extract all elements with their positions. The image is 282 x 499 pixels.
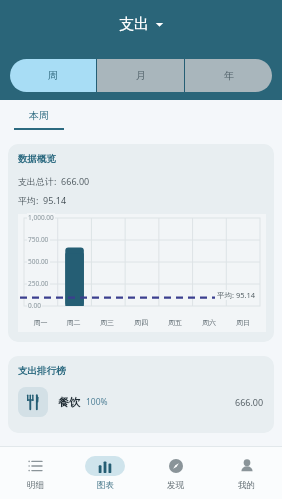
staticText: 0.00 (28, 301, 41, 310)
staticText: 周五 (158, 318, 192, 327)
button[interactable]: 数据概览 (8, 144, 274, 342)
other: 发现 (169, 459, 183, 473)
button[interactable]: 我的 (211, 447, 282, 499)
staticText: 明细 (27, 480, 44, 491)
button[interactable]: 支出排行榜 (8, 356, 274, 433)
staticText: 发现 (167, 480, 184, 491)
other: 明细 (28, 459, 42, 473)
staticText: 支出 (119, 15, 149, 34)
staticText: 数据概览 (18, 153, 56, 165)
button[interactable]: 餐饮 (18, 387, 264, 417)
staticText: 750.00 (28, 235, 49, 244)
staticText: 平均: 95.14 (217, 290, 256, 300)
other: 图表 (98, 459, 112, 473)
staticText: 本周 (29, 109, 49, 122)
staticText: 666.00 (235, 396, 264, 408)
staticText: 我的 (238, 480, 255, 491)
staticText: 周日 (226, 318, 260, 327)
staticText: 500.00 (28, 257, 49, 266)
staticText: 图表 (97, 480, 114, 491)
staticText: 周二 (57, 318, 90, 327)
button[interactable]: 图表 (70, 447, 140, 499)
button[interactable]: 本周 (14, 109, 64, 130)
staticText: 支出总计: 666.00 (18, 175, 90, 187)
staticText: 250.00 (28, 279, 49, 288)
button[interactable]: 支出 (115, 13, 168, 36)
other: 我的 (240, 459, 254, 473)
staticText: 周四 (124, 318, 158, 327)
staticText: 支出排行榜 (18, 365, 66, 377)
staticText: 年 (224, 69, 234, 82)
staticText: 餐饮 (58, 395, 80, 409)
button[interactable]: 明细 (0, 447, 70, 499)
button[interactable]: 发现 (140, 447, 211, 499)
staticText: 1,000.00 (28, 213, 54, 222)
staticText: 平均: 95.14 (18, 194, 67, 206)
staticText: 月 (136, 69, 146, 82)
staticText: 周六 (192, 318, 226, 327)
button[interactable]: 周 (10, 59, 96, 92)
staticText: 周三 (90, 318, 124, 327)
button[interactable]: 月 (97, 59, 184, 92)
button[interactable]: 年 (185, 59, 272, 92)
staticText: 100% (86, 396, 108, 408)
staticText: 周 (48, 69, 58, 82)
staticText: 周一 (24, 318, 57, 327)
